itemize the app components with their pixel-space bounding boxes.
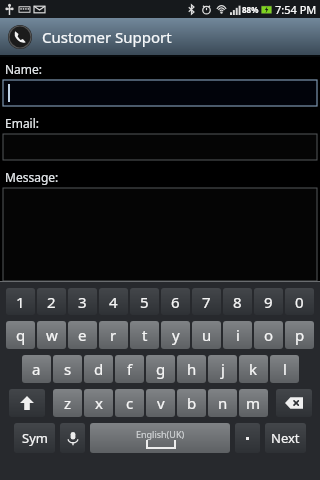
staticText: k <box>249 359 258 379</box>
staticText: n <box>218 393 228 413</box>
button[interactable]: m <box>239 389 268 417</box>
button[interactable]: v <box>146 389 175 417</box>
button[interactable]: Period <box>235 423 260 453</box>
staticText: Customer Support <box>42 27 172 47</box>
button[interactable]: u <box>192 321 221 349</box>
staticText: t <box>142 325 148 345</box>
button[interactable]: a <box>22 355 51 383</box>
button[interactable]: p <box>285 321 314 349</box>
staticText: p <box>295 325 305 345</box>
button[interactable]: q <box>6 321 35 349</box>
button[interactable]: English(UK) <box>90 423 230 453</box>
button[interactable]: Next <box>265 423 306 453</box>
button[interactable]: i <box>223 321 252 349</box>
staticText: Name: <box>5 61 43 77</box>
staticText: u <box>202 325 212 345</box>
button[interactable]: s <box>53 355 82 383</box>
staticText: 2 <box>47 292 56 312</box>
button[interactable]: 7 <box>192 288 221 315</box>
button[interactable]: f <box>115 355 144 383</box>
button[interactable]: k <box>239 355 268 383</box>
button[interactable]: 5 <box>130 288 159 315</box>
button[interactable]: 8 <box>223 288 252 315</box>
button[interactable]: 0 <box>285 288 314 315</box>
button[interactable]: Customer Support <box>0 18 320 55</box>
staticText: a <box>32 359 41 379</box>
button[interactable] <box>3 80 317 106</box>
button[interactable]: r <box>99 321 128 349</box>
staticText: English(UK) <box>136 428 185 440</box>
staticText: o <box>264 325 274 345</box>
button[interactable]: 6 <box>161 288 190 315</box>
staticText: 8 <box>233 292 242 312</box>
button[interactable]: Sym <box>14 423 55 453</box>
button[interactable]: o <box>254 321 283 349</box>
staticText: Sym <box>22 429 48 447</box>
staticText: 9 <box>264 292 273 312</box>
staticText: i <box>236 325 240 345</box>
staticText: 88% <box>242 4 259 15</box>
button[interactable]: c <box>115 389 144 417</box>
staticText: q <box>16 325 26 345</box>
staticText: 0 <box>295 292 304 312</box>
button[interactable]: 2 <box>37 288 66 315</box>
button[interactable]: x <box>84 389 113 417</box>
staticText: s <box>64 359 72 379</box>
button[interactable]: y <box>161 321 190 349</box>
staticText: d <box>94 359 104 379</box>
button[interactable]: 1 <box>6 288 35 315</box>
button[interactable] <box>3 134 317 160</box>
staticText: z <box>64 393 72 413</box>
button[interactable] <box>3 188 317 281</box>
staticText: f <box>127 359 133 379</box>
button[interactable]: j <box>208 355 237 383</box>
staticText: v <box>157 393 165 413</box>
button[interactable]: Backspace <box>276 389 312 417</box>
button[interactable]: z <box>53 389 82 417</box>
staticText: l <box>283 359 287 379</box>
staticText: 7:54 PM <box>275 2 317 17</box>
staticText: g <box>156 359 166 379</box>
staticText: j <box>221 359 225 379</box>
button[interactable]: l <box>270 355 299 383</box>
staticText: x <box>95 393 103 413</box>
staticText: 4 <box>109 292 118 312</box>
staticText: Email: <box>5 115 40 131</box>
staticText: 3 <box>78 292 87 312</box>
button[interactable]: 3 <box>68 288 97 315</box>
staticText: r <box>110 325 117 345</box>
button[interactable]: t <box>130 321 159 349</box>
button[interactable]: h <box>177 355 206 383</box>
staticText: Message: <box>5 169 59 185</box>
button[interactable]: 4 <box>99 288 128 315</box>
staticText: e <box>78 325 87 345</box>
button[interactable]: 9 <box>254 288 283 315</box>
staticText: c <box>126 393 134 413</box>
staticText: b <box>187 393 197 413</box>
staticText: 5 <box>140 292 149 312</box>
button[interactable]: n <box>208 389 237 417</box>
button[interactable]: e <box>68 321 97 349</box>
staticText: 7 <box>202 292 211 312</box>
button[interactable]: g <box>146 355 175 383</box>
button[interactable]: d <box>84 355 113 383</box>
staticText: 6 <box>171 292 180 312</box>
staticText: w <box>46 325 58 345</box>
button[interactable]: w <box>37 321 66 349</box>
button[interactable]: Shift <box>9 389 45 417</box>
staticText: h <box>187 359 197 379</box>
staticText: 1 <box>16 292 25 312</box>
button[interactable]: Voice input <box>60 423 85 453</box>
button[interactable]: b <box>177 389 206 417</box>
staticText: Next <box>271 429 300 447</box>
staticText: m <box>246 393 261 413</box>
staticText: y <box>172 325 180 345</box>
